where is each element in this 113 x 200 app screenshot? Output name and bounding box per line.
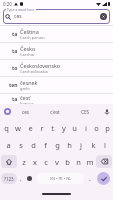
button[interactable]: p [102, 119, 113, 136]
staticText: Type a word here [7, 7, 35, 12]
staticText: garlic [20, 86, 31, 91]
staticText: to [12, 65, 18, 72]
staticText: Czechia [20, 52, 34, 57]
staticText: Československo [20, 62, 61, 69]
staticText: ta [12, 48, 18, 55]
staticText: 0:20 [3, 1, 12, 7]
staticText: y [62, 123, 66, 133]
button[interactable]: w [12, 119, 24, 136]
button[interactable]: ces [10, 104, 40, 119]
staticText: . [89, 174, 91, 184]
staticText: v [55, 157, 59, 167]
staticText: a [6, 140, 11, 150]
button[interactable]: o [91, 119, 102, 136]
button[interactable]: Emoji [23, 170, 36, 187]
button[interactable]: r [36, 119, 47, 136]
button[interactable]: u [69, 119, 80, 136]
staticText: h [67, 140, 72, 150]
staticText: ?123 [4, 176, 14, 182]
button[interactable]: g [51, 136, 63, 153]
staticText: b [65, 157, 70, 167]
button[interactable]: c [40, 153, 51, 170]
staticText: w [15, 123, 21, 133]
button[interactable]: f [39, 136, 51, 153]
staticText: l [104, 140, 106, 150]
button[interactable]: Clear text [100, 13, 107, 20]
staticText: g [55, 140, 60, 150]
staticText: ten [9, 82, 18, 89]
staticText: c [44, 157, 48, 167]
button[interactable]: x [29, 153, 40, 170]
button[interactable]: to [0, 60, 113, 77]
staticText: Czech person [20, 35, 45, 40]
button[interactable]: a [2, 136, 15, 153]
staticText: q [4, 123, 9, 133]
staticText: e [28, 123, 33, 133]
button[interactable]: Enter [94, 170, 113, 187]
staticText: ta [12, 31, 18, 38]
staticText: s [19, 140, 23, 150]
button[interactable]: n [73, 153, 84, 170]
button[interactable]: y [58, 119, 69, 136]
button[interactable]: l [99, 136, 111, 153]
button[interactable]: Voice input [100, 104, 113, 119]
other: Search [5, 14, 11, 20]
staticText: f [44, 140, 47, 150]
button[interactable]: . [85, 170, 94, 187]
staticText: Čeština [20, 28, 39, 35]
button[interactable]: ta [0, 26, 113, 43]
button[interactable]: ta [0, 43, 113, 60]
button[interactable]: , [18, 170, 23, 187]
staticText: , [20, 175, 22, 183]
button[interactable]: EN • FR • NL [37, 173, 84, 184]
button[interactable]: CES [70, 104, 100, 119]
staticText: d [31, 140, 36, 150]
staticText: n [76, 157, 81, 167]
button[interactable]: e [24, 119, 36, 136]
staticText: Czechoslovakia [20, 69, 48, 74]
button[interactable]: b [62, 153, 73, 170]
button[interactable]: ?123 [1, 173, 17, 184]
staticText: EN • FR • NL [50, 176, 72, 181]
staticText: ces [22, 109, 29, 115]
staticText: i [85, 123, 87, 133]
button[interactable]: k [87, 136, 99, 153]
button[interactable]: d [27, 136, 39, 153]
staticText: Česko [20, 45, 36, 52]
button[interactable]: s [15, 136, 27, 153]
staticText: CES [81, 109, 89, 115]
button[interactable]: ten [0, 77, 113, 94]
staticText: ces [14, 13, 22, 20]
staticText: p [105, 123, 110, 133]
button[interactable]: v [51, 153, 62, 170]
button[interactable]: Google search [1, 104, 14, 119]
staticText: c'est [50, 109, 60, 115]
button[interactable]: z [18, 153, 29, 170]
staticText: z [22, 157, 26, 167]
staticText: m [86, 157, 94, 167]
staticText: česnek [20, 79, 38, 86]
staticText: t [51, 123, 54, 133]
staticText: ta [12, 96, 18, 103]
button[interactable]: j [75, 136, 87, 153]
button[interactable]: i [80, 119, 91, 136]
button[interactable]: m [84, 153, 95, 170]
button[interactable]: c'est [40, 104, 70, 119]
staticText: u [72, 123, 77, 133]
button[interactable]: q [0, 119, 12, 136]
staticText: j [80, 140, 82, 150]
staticText: k [91, 140, 96, 150]
staticText: honour [20, 101, 34, 104]
button[interactable]: ta [0, 94, 113, 104]
button[interactable]: Shift [1, 155, 17, 168]
button[interactable]: t [47, 119, 58, 136]
button[interactable]: h [63, 136, 75, 153]
staticText: česť [20, 94, 31, 101]
staticText: r [40, 123, 44, 133]
staticText: x [33, 157, 37, 167]
button[interactable]: Backspace [96, 155, 112, 168]
staticText: o [94, 123, 99, 133]
